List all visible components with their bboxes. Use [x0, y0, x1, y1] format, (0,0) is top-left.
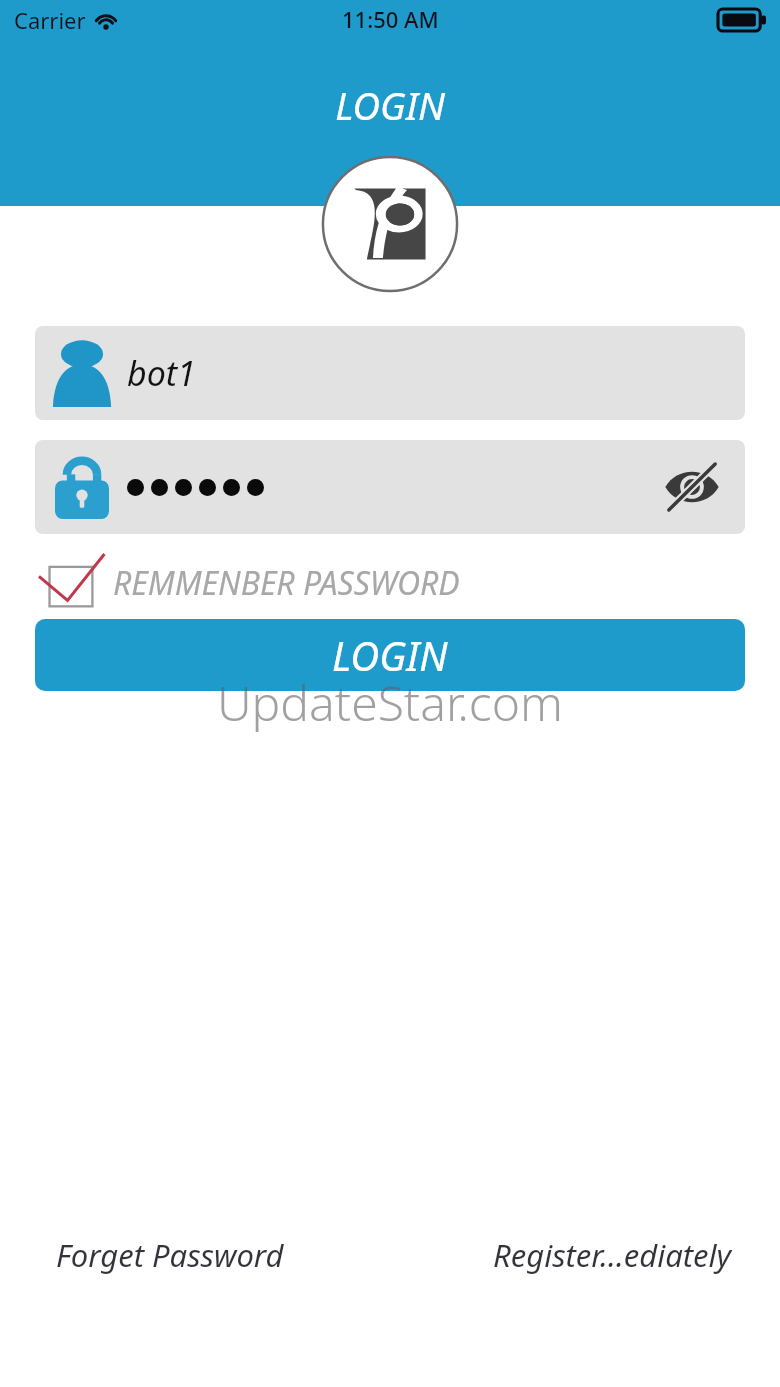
button[interactable]: Show password [661, 456, 723, 518]
staticText: Register…ediately [493, 1234, 732, 1276]
button[interactable]: Register…ediately [493, 1228, 732, 1282]
button[interactable]: User [35, 326, 745, 420]
staticText: Forget Password [56, 1234, 284, 1276]
staticText: 11:50 AM [342, 4, 439, 34]
other: Battery [718, 9, 766, 31]
staticText: bot1 [127, 350, 196, 396]
button[interactable]: LOGIN [35, 619, 745, 691]
staticText: UpdateStar.com [217, 670, 563, 735]
other: App logo [321, 155, 459, 293]
staticText: LOGIN [335, 79, 445, 131]
staticText: REMMENBER PASSWORD [113, 561, 460, 605]
button[interactable]: Password [35, 440, 745, 534]
staticText: Carrier [14, 5, 86, 35]
other: Wi-Fi [94, 11, 118, 29]
staticText: LOGIN [332, 628, 448, 682]
button[interactable]: REMMENBER PASSWORD [35, 552, 460, 614]
button[interactable]: Forget Password [56, 1228, 284, 1282]
other: Password [55, 455, 109, 519]
other: User [51, 339, 113, 407]
